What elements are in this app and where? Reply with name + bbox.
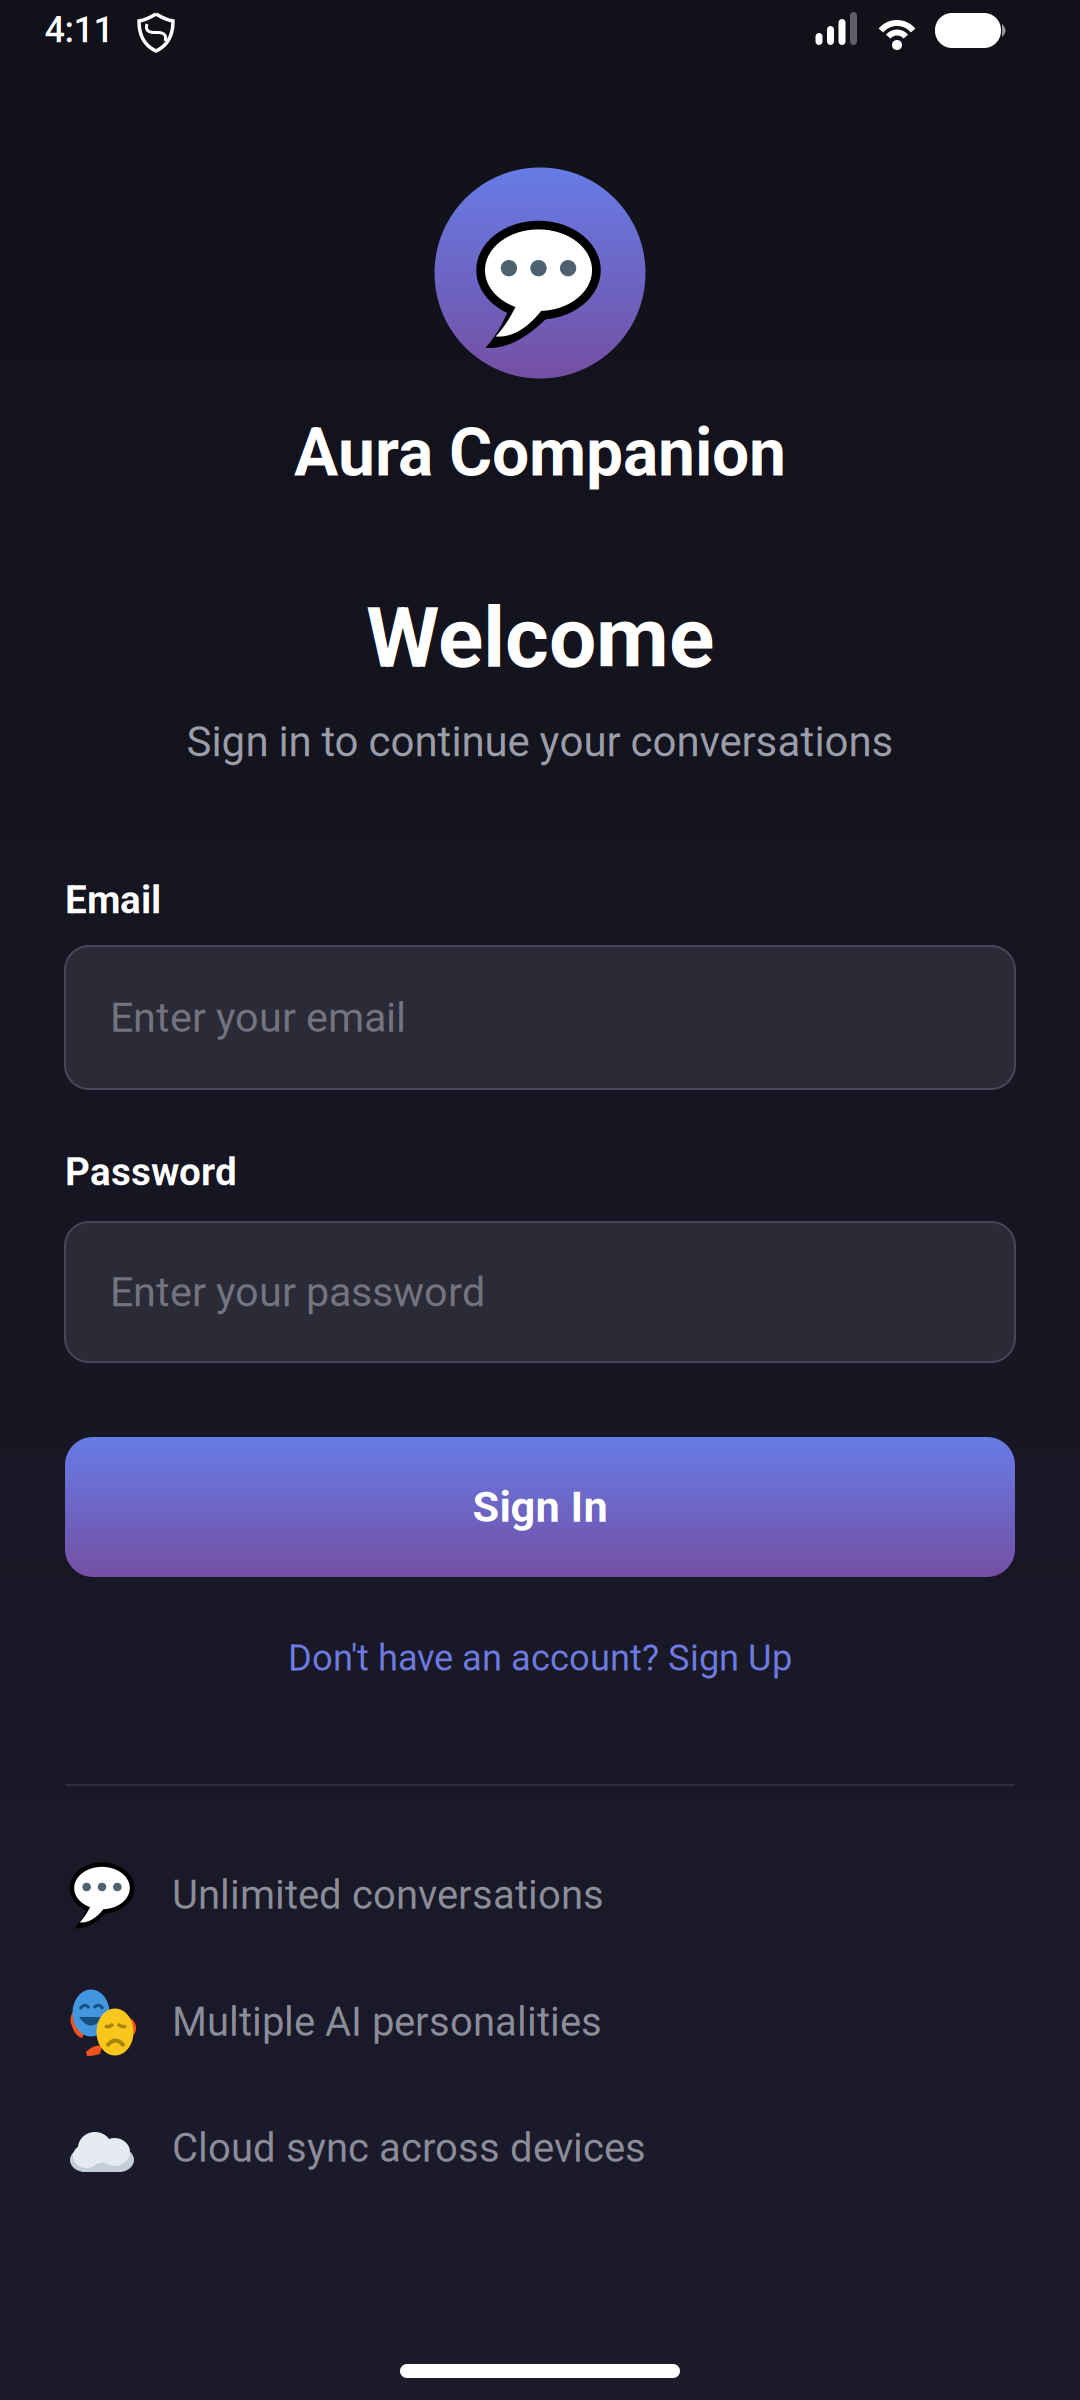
button[interactable]: Enter your password: [65, 1222, 1015, 1362]
staticText: Multiple AI personalities: [172, 1999, 602, 2045]
button[interactable]: Enter your email: [65, 946, 1015, 1089]
staticText: Enter your email: [110, 993, 406, 1042]
staticText: Unlimited conversations: [172, 1872, 604, 1918]
button[interactable]: Sign In: [65, 1437, 1015, 1577]
staticText: Password: [65, 1149, 237, 1195]
staticText: Cloud sync across devices: [172, 2125, 646, 2171]
staticText: Don't have an account? Sign Up: [288, 1637, 792, 1679]
staticText: Welcome: [366, 589, 714, 687]
button[interactable]: Don't have an account? Sign Up: [288, 1637, 792, 1679]
staticText: Enter your password: [110, 1268, 485, 1316]
staticText: Sign in to continue your conversations: [186, 717, 893, 767]
staticText: Email: [65, 877, 161, 923]
staticText: Sign In: [472, 1482, 607, 1532]
staticText: Aura Companion: [294, 414, 786, 492]
staticText: 4:11: [44, 9, 113, 51]
